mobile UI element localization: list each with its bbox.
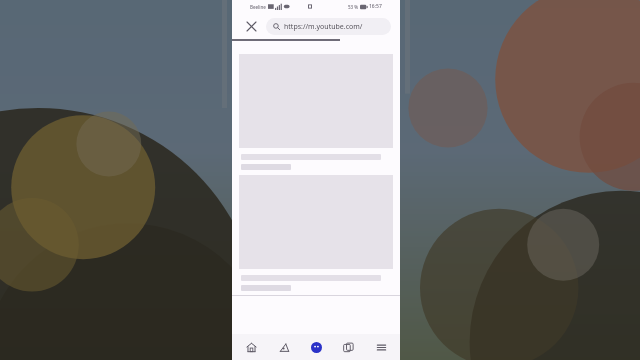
button[interactable]: https://m.youtube.com/: [266, 18, 391, 35]
button[interactable]: Menu: [368, 334, 394, 360]
staticText: 16:57: [369, 3, 382, 10]
button[interactable]: Shields: [303, 334, 329, 360]
button[interactable]: Close tab: [242, 17, 260, 35]
staticText: Beeline: [250, 4, 266, 10]
staticText: 53 %: [348, 4, 359, 10]
button[interactable]: Share: [271, 334, 297, 360]
button[interactable]: Tabs: [335, 334, 361, 360]
button[interactable]: Home: [238, 334, 264, 360]
staticText: https://m.youtube.com/: [284, 22, 363, 32]
